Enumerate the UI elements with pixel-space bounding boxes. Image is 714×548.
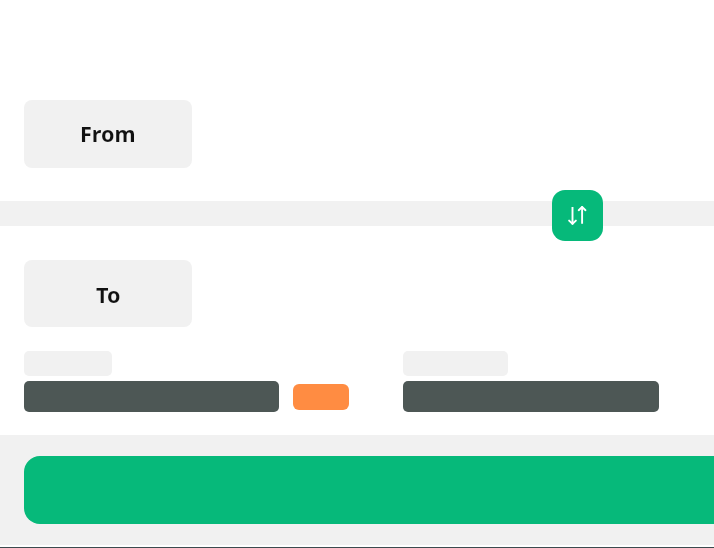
button[interactable]: From (24, 100, 192, 168)
button[interactable]: Search (24, 456, 714, 524)
staticText: To (96, 280, 121, 309)
button[interactable]: Swap origin and destination (552, 190, 603, 241)
staticText: From (80, 119, 136, 148)
button[interactable]: To (24, 260, 192, 327)
